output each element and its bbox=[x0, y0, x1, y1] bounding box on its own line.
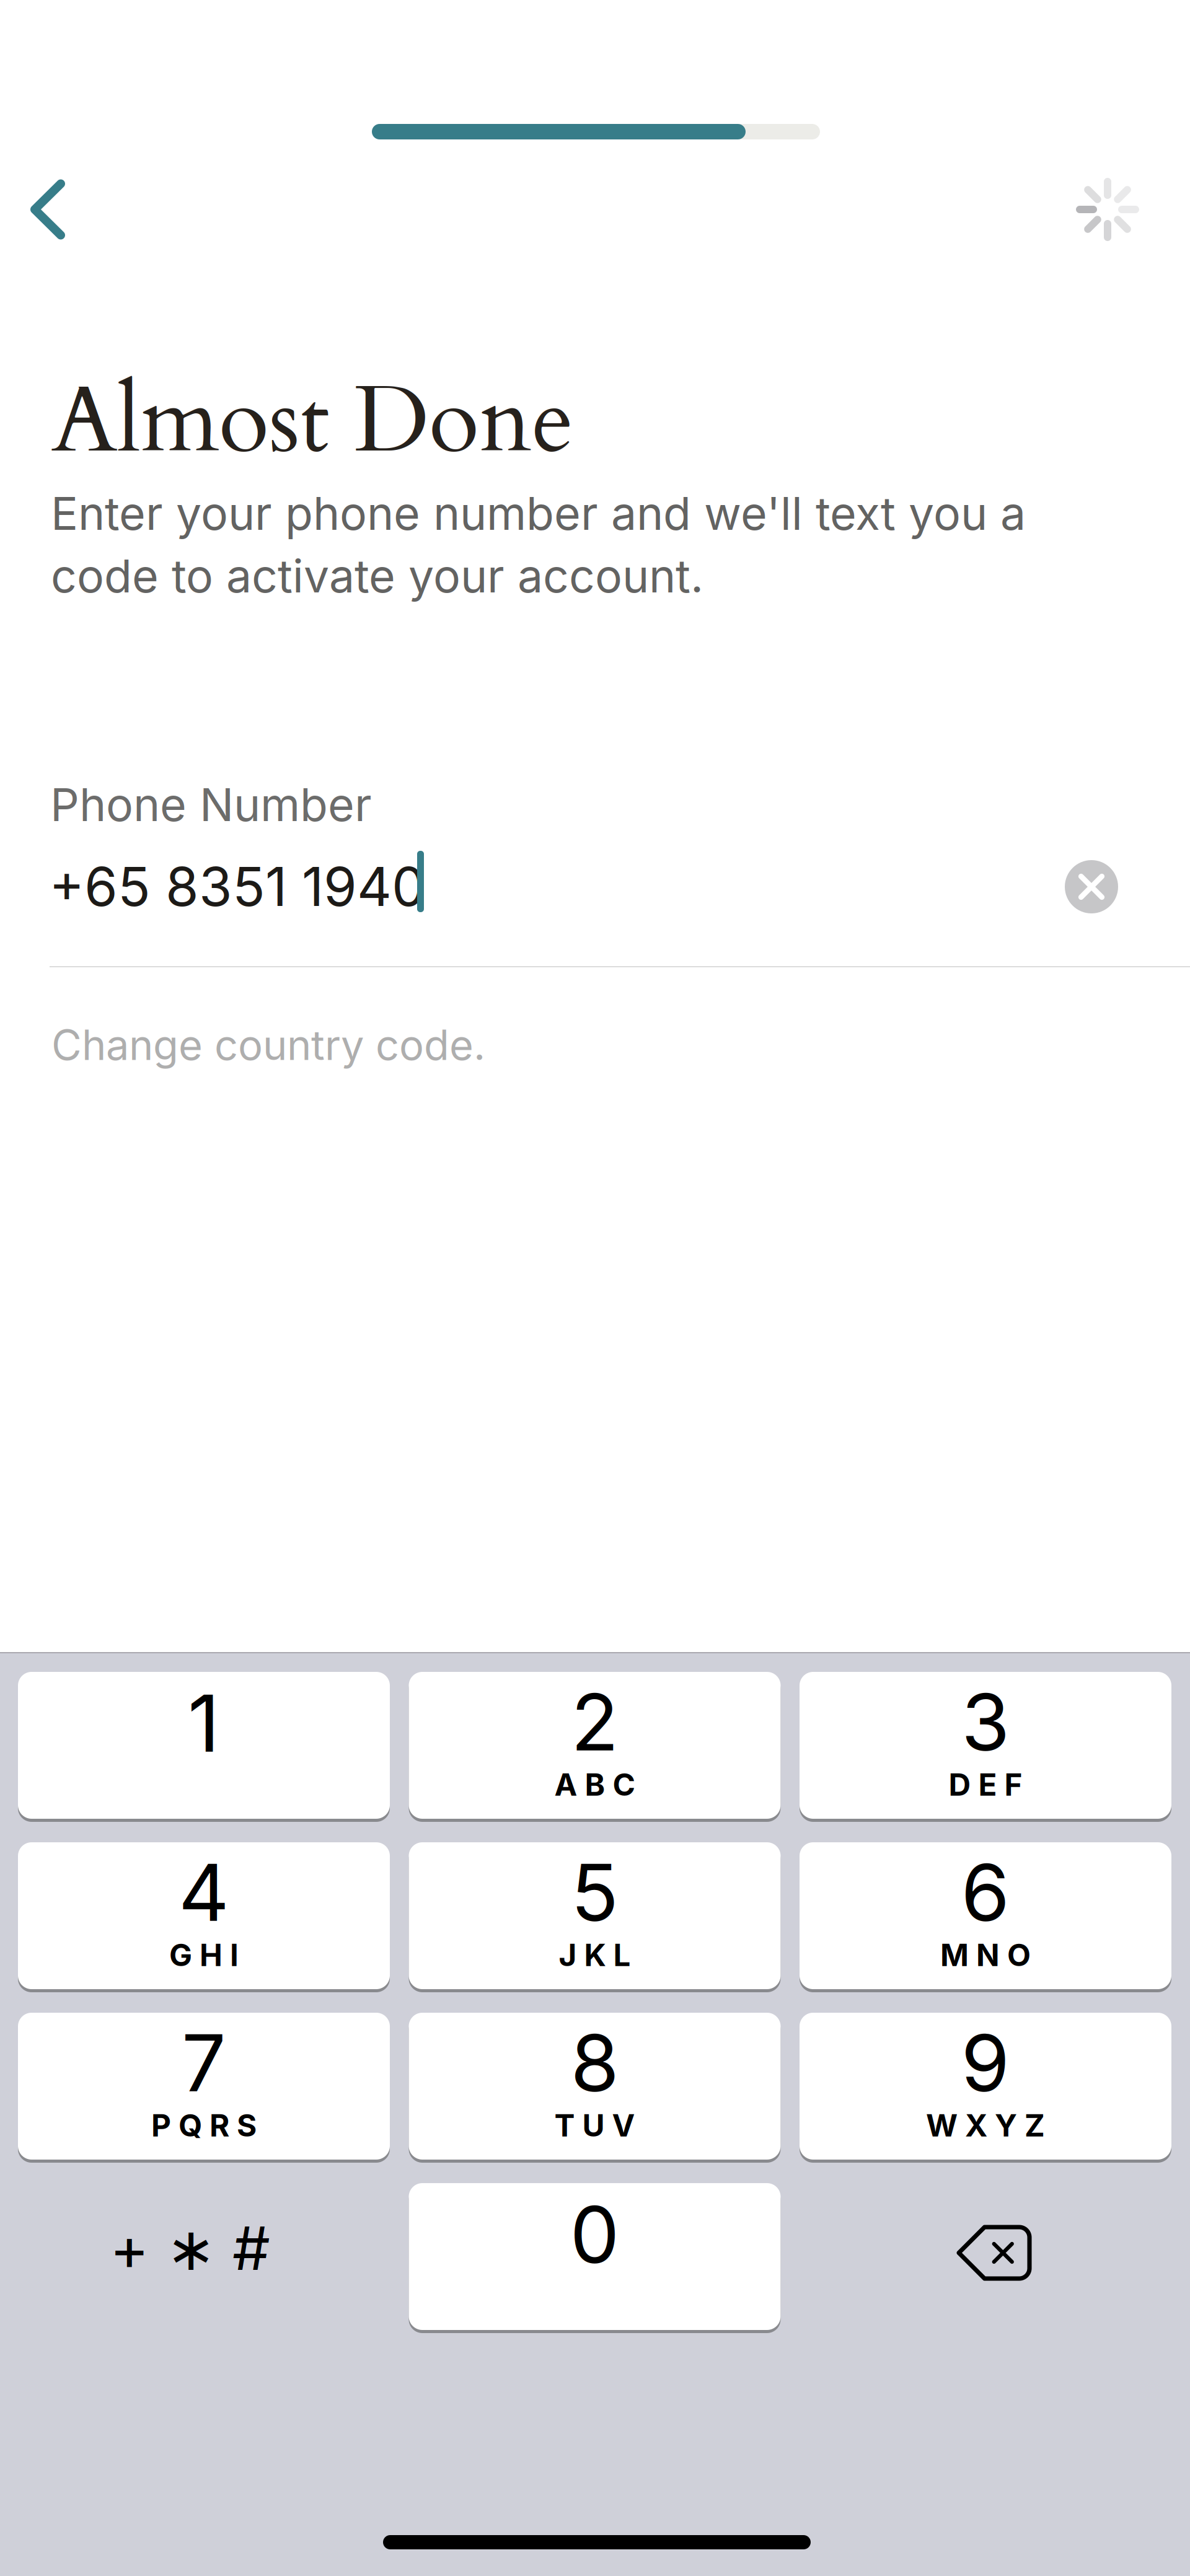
staticText: Phone Number bbox=[50, 777, 372, 832]
staticText: code to activate your account. bbox=[51, 548, 703, 603]
button[interactable]: Back bbox=[4, 166, 91, 253]
button[interactable]: 4 bbox=[18, 1842, 390, 1989]
staticText: G H I bbox=[169, 1936, 239, 1973]
staticText: D E F bbox=[949, 1766, 1022, 1803]
staticText: Almost Done bbox=[51, 359, 574, 484]
staticText: Enter your phone number and we'll text y… bbox=[51, 486, 1026, 541]
button[interactable]: 5 bbox=[409, 1842, 781, 1989]
staticText: 8 bbox=[571, 2015, 619, 2110]
staticText: 6 bbox=[961, 1845, 1010, 1940]
staticText: 2 bbox=[571, 1674, 619, 1769]
staticText: Change country code. bbox=[51, 1020, 485, 1070]
staticText: 0 bbox=[570, 2187, 619, 2282]
staticText: 4 bbox=[178, 1845, 229, 1940]
staticText: M N O bbox=[940, 1936, 1031, 1973]
staticText: T U V bbox=[554, 2107, 635, 2144]
staticText: + ∗ # bbox=[110, 2212, 270, 2284]
button[interactable]: 2 bbox=[409, 1672, 781, 1819]
staticText: A B C bbox=[554, 1766, 635, 1803]
staticText: 5 bbox=[571, 1845, 619, 1940]
button[interactable]: Delete bbox=[800, 2183, 1171, 2330]
button[interactable]: 1 bbox=[18, 1672, 390, 1819]
staticText: 1 bbox=[188, 1676, 220, 1771]
button[interactable]: 8 bbox=[409, 2013, 781, 2160]
staticText: 3 bbox=[961, 1674, 1010, 1769]
staticText: J K L bbox=[559, 1936, 631, 1973]
staticText: W X Y Z bbox=[926, 2107, 1045, 2144]
staticText: 7 bbox=[182, 2015, 226, 2110]
button[interactable]: 3 bbox=[800, 1672, 1171, 1819]
button[interactable]: 6 bbox=[800, 1842, 1171, 1989]
button[interactable]: 0 bbox=[409, 2183, 781, 2330]
button[interactable]: Plus, star, pound bbox=[18, 2183, 390, 2330]
button[interactable]: 7 bbox=[18, 2013, 390, 2160]
button[interactable]: Change country code. bbox=[51, 1020, 485, 1070]
staticText: +65 8351 1940 bbox=[49, 854, 426, 919]
staticText: P Q R S bbox=[151, 2107, 257, 2144]
button[interactable]: Clear text bbox=[1051, 846, 1132, 927]
button[interactable]: 9 bbox=[800, 2013, 1171, 2160]
staticText: 9 bbox=[961, 2015, 1010, 2110]
